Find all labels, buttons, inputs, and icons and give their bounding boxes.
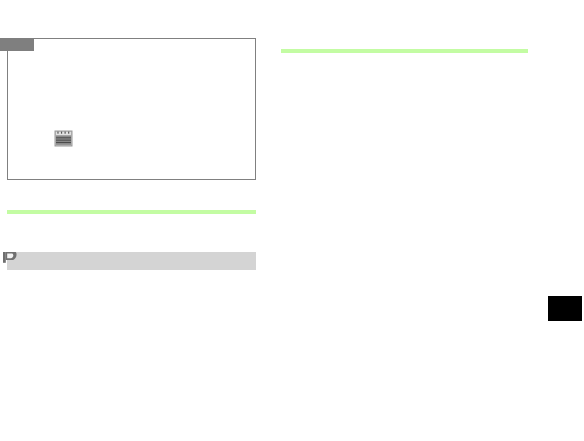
button[interactable] (7, 38, 256, 180)
button[interactable]: Flag marker (3, 252, 17, 267)
button[interactable]: Embedded image (55, 131, 72, 146)
button[interactable] (7, 252, 256, 270)
